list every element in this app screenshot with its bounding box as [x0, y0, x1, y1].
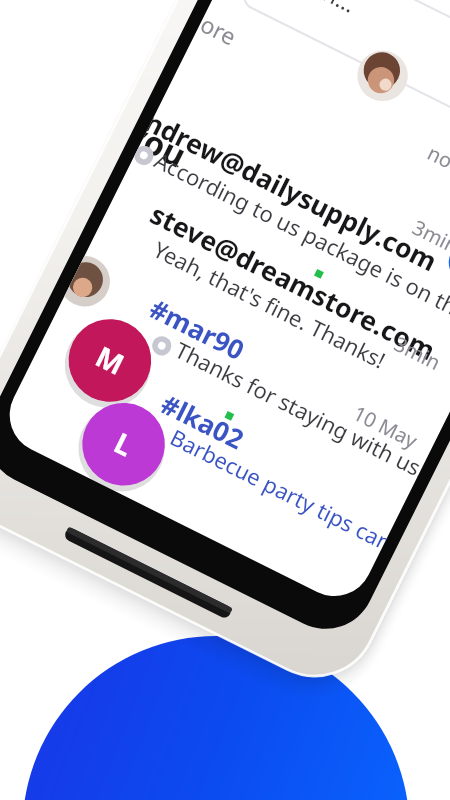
button[interactable]: Phone mockup showing inbox app [0, 0, 450, 800]
